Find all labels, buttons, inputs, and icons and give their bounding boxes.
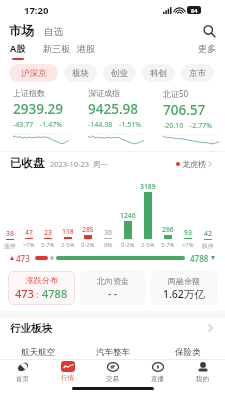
staticText: 创业 bbox=[111, 68, 128, 79]
button[interactable]: 板块 bbox=[64, 64, 97, 82]
staticText: 保险类 bbox=[175, 347, 201, 358]
staticText: -1.47% bbox=[40, 120, 62, 130]
staticText: 4788 bbox=[42, 286, 68, 301]
staticText: 5-7% bbox=[161, 241, 175, 249]
staticText: 科创 bbox=[150, 68, 167, 79]
button[interactable]: 创业 bbox=[103, 64, 136, 82]
staticText: 473 bbox=[16, 253, 30, 264]
staticText: 0-2% bbox=[121, 241, 135, 249]
button[interactable]: 汽车整车 bbox=[75, 345, 150, 359]
staticText: >7% bbox=[182, 241, 194, 249]
button[interactable]: 行情 bbox=[45, 361, 90, 382]
button[interactable]: 交易 bbox=[90, 361, 135, 383]
button[interactable]: 自选 bbox=[44, 26, 63, 38]
button[interactable]: 我的 bbox=[180, 361, 225, 383]
staticText: 706.57 bbox=[163, 101, 206, 119]
button[interactable]: 首页 bbox=[0, 361, 45, 383]
button[interactable]: 北向资金 bbox=[80, 271, 146, 305]
staticText: 首页 bbox=[16, 375, 29, 383]
button[interactable]: 航天航空 bbox=[0, 345, 75, 359]
staticText: 1240 bbox=[120, 211, 136, 220]
staticText: 84 bbox=[191, 7, 198, 14]
staticText: 17:20 bbox=[24, 4, 49, 17]
staticText: 航天航空 bbox=[21, 347, 55, 358]
staticText: 交易 bbox=[106, 375, 119, 383]
staticText: : bbox=[34, 288, 42, 300]
staticText: 北向资金 bbox=[97, 276, 129, 286]
staticText: 285 bbox=[82, 225, 94, 234]
staticText: 汽车整车 bbox=[96, 347, 130, 358]
staticText: 跌停 bbox=[202, 242, 214, 249]
staticText: 已收盘 bbox=[10, 156, 45, 170]
staticText: 118 bbox=[62, 227, 74, 236]
button[interactable]: 京市 bbox=[181, 64, 214, 82]
staticText: 深证成指 bbox=[88, 88, 120, 98]
button[interactable]: 港股 bbox=[77, 43, 95, 54]
staticText: -1.51% bbox=[119, 120, 141, 130]
button[interactable]: 保险类 bbox=[150, 345, 225, 359]
staticText: -43.77 bbox=[13, 120, 34, 130]
staticText: 42 bbox=[204, 229, 212, 238]
button[interactable]: 新三板 bbox=[43, 43, 70, 54]
button[interactable]: 北证50 bbox=[150, 88, 225, 146]
button[interactable]: 两融余额 bbox=[151, 271, 217, 305]
staticText: 京市 bbox=[189, 68, 206, 79]
staticText: 2-5% bbox=[61, 241, 75, 249]
staticText: -20.10 bbox=[163, 121, 184, 131]
staticText: 行情 bbox=[61, 374, 74, 382]
staticText: -144.38 bbox=[88, 120, 113, 130]
button[interactable]: 科创 bbox=[142, 64, 175, 82]
staticText: 30 bbox=[104, 228, 112, 237]
staticText: 266 bbox=[162, 225, 174, 234]
staticText: >7% bbox=[23, 241, 35, 249]
staticText: 涨停 bbox=[4, 242, 16, 249]
button[interactable]: 沪深京 bbox=[9, 64, 58, 82]
staticText: 47 bbox=[25, 228, 33, 237]
button[interactable]: 行业板块 bbox=[0, 319, 225, 339]
staticText: 9425.98 bbox=[88, 100, 139, 118]
button[interactable]: 上证指数 bbox=[0, 88, 75, 146]
staticText: 上证指数 bbox=[13, 88, 45, 98]
staticText: 2-5% bbox=[141, 241, 155, 249]
staticText: 直播 bbox=[151, 375, 164, 383]
staticText: 23 bbox=[44, 228, 52, 237]
staticText: 我的 bbox=[196, 375, 209, 383]
staticText: 0-2% bbox=[81, 241, 95, 249]
staticText: 3189 bbox=[140, 182, 156, 191]
staticText: 北证50 bbox=[163, 88, 189, 99]
staticText: 市场 bbox=[9, 23, 34, 39]
staticText: 沪深京 bbox=[21, 68, 47, 79]
button[interactable]: Search bbox=[200, 22, 218, 40]
staticText: 2939.29 bbox=[13, 100, 64, 118]
staticText: 龙虎榜 bbox=[182, 159, 206, 169]
button[interactable]: 涨跌分布 bbox=[8, 271, 75, 305]
staticText: 2023-10-23 bbox=[50, 159, 90, 169]
button[interactable]: 深证成指 bbox=[75, 88, 150, 146]
staticText: 0% bbox=[104, 241, 113, 249]
staticText: - - bbox=[108, 287, 118, 301]
staticText: 两融余额 bbox=[168, 276, 200, 286]
staticText: -2.77% bbox=[190, 121, 212, 131]
staticText: 38 bbox=[6, 229, 14, 238]
staticText: 473 bbox=[15, 286, 34, 301]
button[interactable]: 直播 bbox=[135, 361, 180, 383]
button[interactable]: 龙虎榜 bbox=[176, 159, 212, 169]
staticText: 5-7% bbox=[41, 241, 55, 249]
staticText: 涨跌分布 bbox=[26, 275, 58, 285]
staticText: 4788 bbox=[190, 253, 209, 264]
staticText: A股 bbox=[10, 42, 26, 54]
button[interactable]: A股 bbox=[10, 42, 26, 60]
staticText: 周一 bbox=[93, 160, 108, 169]
staticText: 93 bbox=[184, 228, 192, 237]
staticText: 1.62万亿 bbox=[163, 287, 205, 301]
button[interactable]: 更多 bbox=[198, 43, 216, 54]
staticText: 行业板块 bbox=[10, 322, 52, 335]
staticText: 板块 bbox=[72, 68, 89, 79]
